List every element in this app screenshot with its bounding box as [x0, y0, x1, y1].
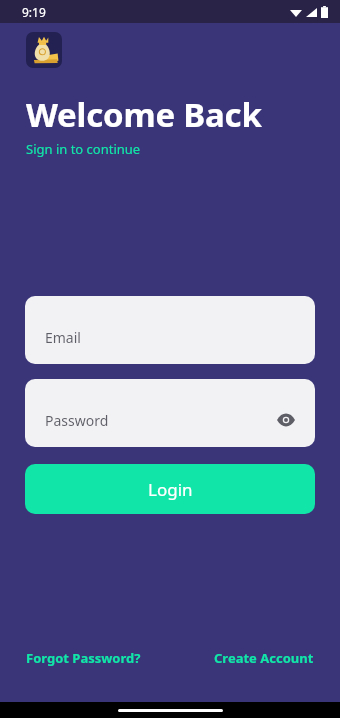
staticText: Email: [45, 328, 81, 347]
button[interactable]: Show password: [273, 407, 299, 433]
staticText: Forgot Password?: [26, 649, 141, 667]
staticText: Login: [148, 478, 193, 501]
staticText: 9:19: [22, 4, 46, 20]
button[interactable]: Email: [25, 296, 315, 364]
staticText: Password: [45, 411, 109, 430]
button[interactable]: Create Account: [214, 649, 314, 667]
staticText: Create Account: [214, 649, 314, 667]
staticText: Sign in to continue: [26, 140, 141, 158]
button[interactable]: Forgot Password?: [26, 649, 141, 667]
button[interactable]: Password: [25, 379, 315, 447]
staticText: Welcome Back: [26, 92, 262, 137]
other: App logo: [26, 32, 62, 68]
button[interactable]: Login: [25, 464, 315, 514]
